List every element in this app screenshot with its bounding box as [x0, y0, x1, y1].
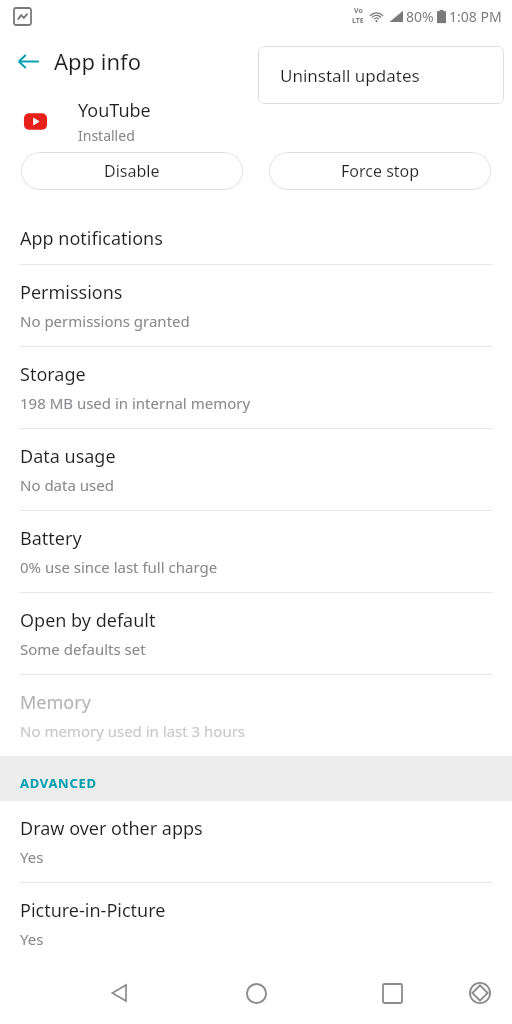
- button[interactable]: Open by default: [0, 593, 512, 674]
- button[interactable]: Back: [8, 41, 48, 81]
- staticText: 80%: [406, 7, 434, 26]
- button[interactable]: Draw over other apps: [0, 801, 512, 882]
- staticText: Picture-in-Picture: [20, 898, 166, 923]
- button[interactable]: Picture-in-Picture: [0, 883, 512, 964]
- staticText: Storage: [20, 362, 86, 387]
- button[interactable]: Rotate screen: [457, 970, 503, 1016]
- staticText: No memory used in last 3 hours: [20, 721, 246, 741]
- staticText: Force stop: [341, 160, 420, 182]
- staticText: No permissions granted: [20, 311, 190, 331]
- staticText: Data usage: [20, 444, 116, 469]
- button[interactable]: Permissions: [0, 265, 512, 346]
- button[interactable]: Battery: [0, 511, 512, 592]
- staticText: 0% use since last full charge: [20, 557, 218, 577]
- button[interactable]: Force stop: [269, 152, 491, 190]
- button[interactable]: Storage: [0, 347, 512, 428]
- staticText: Vo: [354, 6, 363, 16]
- staticText: App notifications: [20, 226, 163, 251]
- staticText: Draw over other apps: [20, 816, 203, 841]
- staticText: Installed: [78, 126, 135, 145]
- staticText: Open by default: [20, 608, 156, 633]
- staticText: Battery: [20, 526, 82, 551]
- staticText: Yes: [20, 847, 44, 867]
- staticText: No data used: [20, 475, 114, 495]
- staticText: Disable: [104, 160, 160, 182]
- staticText: Memory: [20, 690, 91, 715]
- button[interactable]: Home: [232, 969, 280, 1017]
- button[interactable]: Back: [96, 969, 144, 1017]
- staticText: App info: [54, 46, 141, 76]
- staticText: ADVANCED: [20, 774, 97, 792]
- button[interactable]: Uninstall updates: [258, 46, 504, 104]
- button[interactable]: Disable: [21, 152, 243, 190]
- staticText: Permissions: [20, 280, 123, 305]
- button[interactable]: Data usage: [0, 429, 512, 510]
- button[interactable]: App notifications: [0, 212, 512, 264]
- button[interactable]: Recent apps: [368, 969, 416, 1017]
- staticText: YouTube: [78, 98, 151, 123]
- staticText: Yes: [20, 929, 44, 949]
- staticText: LTE: [352, 16, 364, 26]
- button[interactable]: Memory: [0, 675, 512, 756]
- staticText: 198 MB used in internal memory: [20, 393, 251, 413]
- button[interactable]: YouTube: [0, 90, 512, 152]
- staticText: Uninstall updates: [280, 64, 420, 87]
- staticText: Some defaults set: [20, 639, 146, 659]
- staticText: 1:08 PM: [449, 7, 502, 26]
